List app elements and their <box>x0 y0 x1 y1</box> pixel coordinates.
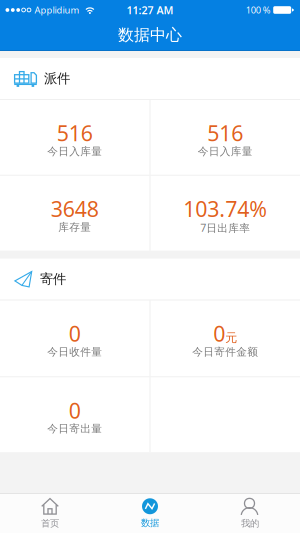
staticText: 元 <box>225 330 237 345</box>
staticText: 516 <box>207 119 243 147</box>
staticText: 0 <box>69 319 81 348</box>
staticText: 103.74% <box>183 195 267 223</box>
staticText: 516 <box>57 119 93 147</box>
staticText: 数据 <box>141 517 159 529</box>
staticText: 今日寄件金额 <box>192 345 258 358</box>
staticText: 今日入库量 <box>198 145 253 158</box>
button[interactable]: 数据 <box>100 494 200 533</box>
staticText: 今日入库量 <box>47 145 102 158</box>
staticText: 库存量 <box>58 221 91 234</box>
staticText: 派件 <box>44 70 70 87</box>
staticText: 7日出库率 <box>200 221 250 235</box>
staticText: 首页 <box>41 518 59 529</box>
staticText: 数据中心 <box>118 25 182 45</box>
staticText: 3648 <box>51 195 99 223</box>
staticText: Applidium <box>34 4 79 16</box>
button[interactable]: 首页 <box>0 494 100 533</box>
staticText: 寄件 <box>40 271 66 287</box>
staticText: 0 <box>69 396 81 424</box>
staticText: 100 % <box>246 4 271 16</box>
button[interactable]: 我的 <box>200 494 300 533</box>
staticText: 0 <box>213 319 225 348</box>
staticText: 今日寄出量 <box>47 422 102 435</box>
staticText: 11:27 AM <box>126 3 173 17</box>
staticText: 我的 <box>241 518 259 529</box>
staticText: 今日收件量 <box>47 345 102 358</box>
